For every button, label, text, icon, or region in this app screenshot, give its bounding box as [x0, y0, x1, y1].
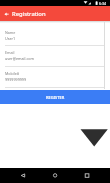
button[interactable]: Mobile# [0, 67, 110, 88]
button[interactable]: Email [0, 46, 110, 67]
button[interactable]: Back [13, 168, 33, 183]
button[interactable]: Home [45, 168, 65, 183]
staticText: 9999999999 [5, 77, 27, 82]
staticText: Registration [12, 10, 46, 18]
staticText: Name [5, 30, 16, 35]
button[interactable]: REGISTER [0, 90, 110, 104]
button[interactable]: Back [0, 6, 12, 21]
staticText: User1 [5, 36, 16, 41]
staticText: Email [5, 50, 15, 55]
staticText: REGISTER [46, 95, 65, 100]
button[interactable]: Name [0, 26, 110, 46]
staticText: user@email.com [5, 56, 34, 61]
staticText: 6:34 [99, 1, 107, 6]
button[interactable]: Recents [77, 168, 97, 183]
staticText: Mobile# [5, 71, 20, 76]
